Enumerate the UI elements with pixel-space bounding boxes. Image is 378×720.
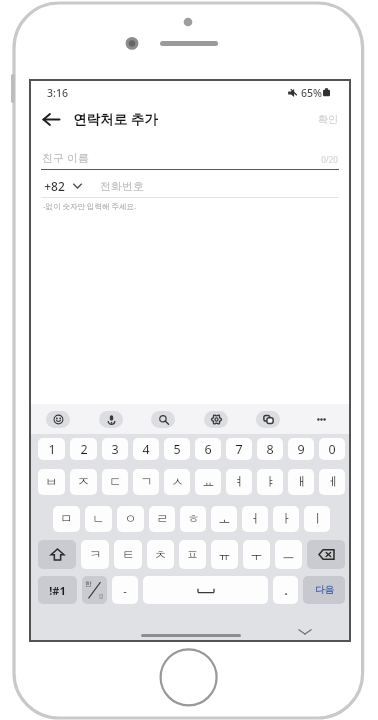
staticText: ㅔ: [326, 474, 339, 490]
button[interactable]: +82: [44, 178, 82, 194]
button[interactable]: ㅗ: [211, 506, 237, 532]
staticText: ㅠ: [218, 547, 231, 563]
button[interactable]: 다음: [303, 576, 345, 604]
staticText: 영: [98, 593, 104, 600]
staticText: 3: [111, 441, 119, 458]
staticText: 연락처로 추가: [73, 110, 158, 128]
button[interactable]: 9: [288, 438, 314, 460]
staticText: 0: [328, 441, 336, 458]
button[interactable]: Back: [38, 106, 64, 132]
staticText: 확인: [318, 113, 338, 126]
staticText: ㅐ: [295, 474, 308, 490]
staticText: 전화번호: [100, 179, 144, 193]
staticText: ㅑ: [264, 474, 277, 490]
button[interactable]: ㅐ: [288, 469, 314, 495]
staticText: ㅎ: [187, 511, 200, 527]
button[interactable]: ㅡ: [275, 540, 302, 569]
button[interactable]: Backspace: [307, 540, 345, 569]
button[interactable]: ㄴ: [85, 506, 112, 532]
staticText: ㄴ: [92, 511, 105, 527]
button[interactable]: Hide keyboard: [294, 621, 316, 643]
button[interactable]: ㅠ: [211, 540, 238, 569]
staticText: ㅇ: [124, 511, 137, 527]
staticText: ㅁ: [60, 511, 73, 527]
button[interactable]: .: [273, 576, 298, 604]
staticText: -: [123, 583, 127, 598]
button[interactable]: 1: [38, 438, 65, 460]
button[interactable]: Settings: [204, 411, 228, 428]
button[interactable]: ㅎ: [180, 506, 206, 532]
staticText: ㄷ: [109, 474, 122, 490]
staticText: ㄹ: [156, 511, 169, 527]
staticText: ㅋ: [89, 547, 102, 563]
button[interactable]: ㅏ: [273, 506, 299, 532]
staticText: ㅈ: [77, 474, 90, 490]
button[interactable]: ㄱ: [133, 469, 159, 495]
staticText: 친구 이름: [42, 150, 89, 165]
button[interactable]: Search: [151, 411, 175, 428]
button[interactable]: 2: [70, 438, 97, 460]
staticText: 다음: [315, 584, 334, 596]
staticText: .: [284, 583, 288, 598]
button[interactable]: 6: [195, 438, 221, 460]
staticText: +82: [44, 178, 65, 194]
staticText: 9: [297, 441, 305, 458]
button[interactable]: ㅍ: [179, 540, 206, 569]
staticText: ㅕ: [233, 474, 246, 490]
button[interactable]: ㅁ: [53, 506, 80, 532]
staticText: ㅏ: [280, 511, 293, 527]
button[interactable]: 5: [164, 438, 190, 460]
button[interactable]: 0: [319, 438, 345, 460]
button[interactable]: 8: [257, 438, 283, 460]
staticText: ㅗ: [218, 511, 231, 527]
button[interactable]: ㄹ: [149, 506, 175, 532]
staticText: 8: [266, 441, 274, 458]
button[interactable]: Space: [143, 576, 268, 604]
button[interactable]: ㅕ: [226, 469, 252, 495]
staticText: -없이 숫자만 입력해 주세요.: [43, 201, 136, 211]
staticText: 한: [85, 580, 92, 588]
staticText: ㅜ: [250, 547, 263, 563]
button[interactable]: 4: [133, 438, 159, 460]
button[interactable]: ㅌ: [114, 540, 142, 569]
staticText: ㄱ: [140, 474, 153, 490]
button[interactable]: More: [309, 411, 333, 428]
button[interactable]: ㅂ: [38, 469, 65, 495]
staticText: 4: [142, 441, 150, 458]
button[interactable]: ㅅ: [164, 469, 190, 495]
staticText: 5: [173, 441, 181, 458]
staticText: ㅍ: [186, 547, 199, 563]
staticText: 2: [80, 441, 88, 458]
button[interactable]: ㅛ: [195, 469, 221, 495]
staticText: ㅣ: [311, 511, 324, 527]
button[interactable]: Emoji: [46, 411, 70, 428]
staticText: ㅡ: [282, 547, 295, 563]
button[interactable]: ㅣ: [304, 506, 330, 532]
button[interactable]: ㅜ: [243, 540, 270, 569]
button[interactable]: Korean English toggle: [82, 576, 107, 604]
button[interactable]: Translate: [256, 411, 280, 428]
button[interactable]: ㅔ: [319, 469, 345, 495]
staticText: 7: [235, 441, 243, 458]
button[interactable]: 3: [102, 438, 128, 460]
button[interactable]: ㅑ: [257, 469, 283, 495]
staticText: 0/20: [321, 154, 338, 165]
button[interactable]: ㅓ: [242, 506, 268, 532]
button[interactable]: ㅇ: [117, 506, 144, 532]
button[interactable]: 7: [226, 438, 252, 460]
button[interactable]: ㄷ: [102, 469, 128, 495]
button[interactable]: !#1: [38, 576, 77, 604]
staticText: 6: [204, 441, 212, 458]
button[interactable]: ㅊ: [147, 540, 174, 569]
staticText: 1: [48, 441, 56, 458]
button[interactable]: -: [112, 576, 138, 604]
staticText: ㅌ: [122, 547, 135, 563]
button[interactable]: ㅋ: [81, 540, 109, 569]
button[interactable]: Voice input: [99, 411, 123, 428]
staticText: ㅛ: [202, 474, 215, 490]
button[interactable]: ㅈ: [70, 469, 97, 495]
staticText: 65%: [301, 86, 322, 100]
button[interactable]: 확인: [315, 109, 341, 130]
staticText: ㅓ: [249, 511, 262, 527]
button[interactable]: Shift: [38, 540, 76, 569]
